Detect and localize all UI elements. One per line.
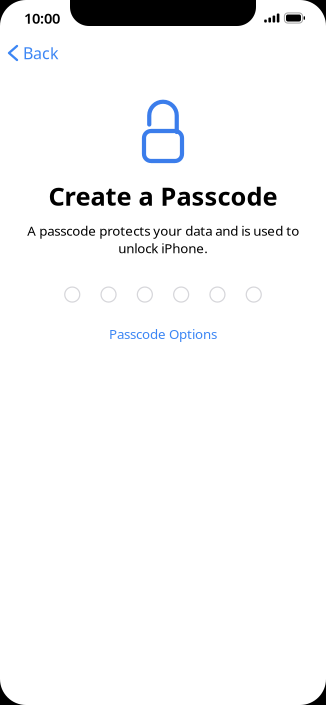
staticText: A passcode protects your data and is use… [27, 222, 299, 257]
button[interactable]: Passcode Options [97, 319, 229, 349]
staticText: Create a Passcode [48, 179, 277, 213]
staticText: Passcode Options [109, 325, 217, 343]
staticText: Back [23, 42, 59, 64]
button[interactable]: Back [0, 35, 71, 71]
staticText: 10:00 [24, 8, 60, 28]
